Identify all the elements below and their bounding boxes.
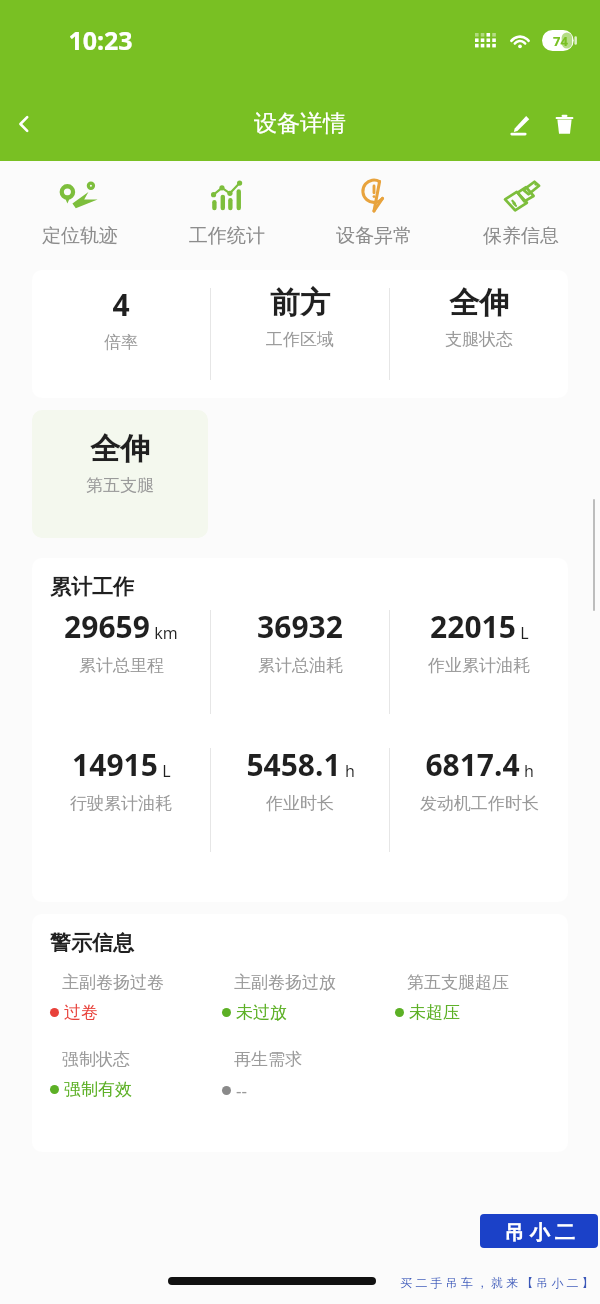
staticText: 5458.1: [246, 744, 341, 785]
staticText: 强制状态: [62, 1049, 130, 1070]
staticText: 保养信息: [483, 224, 559, 248]
staticText: 行驶累计油耗: [70, 793, 172, 814]
staticText: 22015: [430, 606, 516, 647]
button[interactable]: 定位轨迹: [6, 173, 153, 254]
staticText: 74: [553, 32, 568, 50]
staticText: 主副卷扬过放: [234, 972, 336, 993]
button[interactable]: 4: [32, 270, 568, 398]
staticText: 定位轨迹: [42, 224, 118, 248]
button[interactable]: 保养信息: [447, 173, 594, 254]
staticText: 作业累计油耗: [428, 655, 530, 676]
staticText: 前方: [270, 284, 330, 322]
staticText: h: [524, 760, 534, 782]
staticText: 29659: [64, 606, 150, 647]
button[interactable]: 吊 小 二: [480, 1214, 598, 1248]
staticText: 4: [112, 284, 130, 325]
staticText: km: [154, 622, 178, 644]
staticText: 未过放: [236, 1002, 287, 1023]
staticText: 发动机工作时长: [420, 793, 539, 814]
button[interactable]: 工作统计: [153, 173, 300, 254]
button[interactable]: 累计工作: [32, 558, 568, 902]
button[interactable]: Edit: [498, 102, 542, 146]
staticText: 过卷: [64, 1002, 98, 1023]
button[interactable]: 全伸: [32, 410, 208, 538]
staticText: 10:23: [68, 23, 133, 57]
staticText: 未超压: [409, 1002, 460, 1023]
staticText: 第五支腿超压: [407, 972, 509, 993]
staticText: 累计总里程: [79, 655, 164, 676]
staticText: L: [520, 622, 529, 644]
staticText: 工作统计: [189, 224, 265, 248]
button[interactable]: 警示信息: [32, 914, 568, 1152]
staticText: 工作区域: [266, 329, 334, 350]
staticText: 全伸: [90, 430, 150, 468]
staticText: 36932: [257, 606, 343, 647]
staticText: 累计总油耗: [258, 655, 343, 676]
staticText: 作业时长: [266, 793, 334, 814]
staticText: 设备详情: [254, 109, 346, 138]
button[interactable]: Delete: [542, 102, 586, 146]
staticText: 买 二 手 吊 车 ， 就 来 【 吊 小 二 】: [400, 1274, 594, 1290]
staticText: 累计工作: [50, 574, 134, 600]
staticText: 支腿状态: [445, 329, 513, 350]
staticText: 吊 小 二: [504, 1218, 575, 1245]
staticText: 14915: [72, 744, 158, 785]
staticText: L: [162, 760, 171, 782]
staticText: 强制有效: [64, 1079, 132, 1100]
staticText: h: [345, 760, 355, 782]
staticText: 第五支腿: [86, 475, 154, 496]
staticText: --: [236, 1079, 247, 1102]
staticText: 再生需求: [234, 1049, 302, 1070]
staticText: 主副卷扬过卷: [62, 972, 164, 993]
button[interactable]: 设备异常: [300, 173, 447, 254]
staticText: 设备异常: [336, 224, 412, 248]
staticText: 全伸: [449, 284, 509, 322]
staticText: 倍率: [104, 332, 138, 353]
button[interactable]: Back: [0, 100, 48, 148]
staticText: 警示信息: [50, 930, 134, 956]
staticText: 6817.4: [425, 744, 520, 785]
